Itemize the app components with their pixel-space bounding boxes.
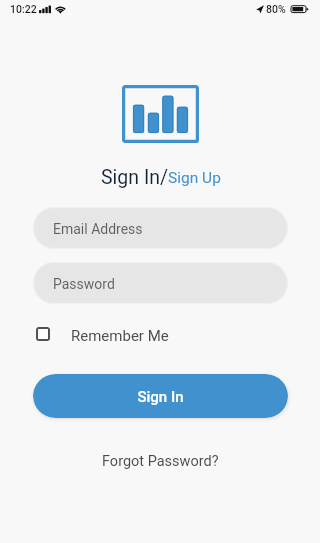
staticText: Sign In/: [101, 166, 168, 189]
staticText: Remember Me: [71, 327, 169, 345]
button[interactable]: Forgot Password?: [94, 447, 227, 476]
button[interactable]: Sign In: [33, 374, 288, 418]
staticText: 10:22: [10, 3, 37, 15]
staticText: Email Address: [53, 221, 143, 237]
button[interactable]: Email Address: [33, 207, 288, 249]
button[interactable]: Password: [33, 262, 288, 304]
staticText: Password: [53, 276, 115, 292]
button[interactable]: Remember Me: [33, 323, 169, 345]
button[interactable]: Sign Up: [168, 169, 221, 187]
staticText: Sign In: [137, 388, 184, 406]
staticText: 80%: [266, 3, 286, 15]
staticText: Forgot Password?: [102, 453, 219, 470]
